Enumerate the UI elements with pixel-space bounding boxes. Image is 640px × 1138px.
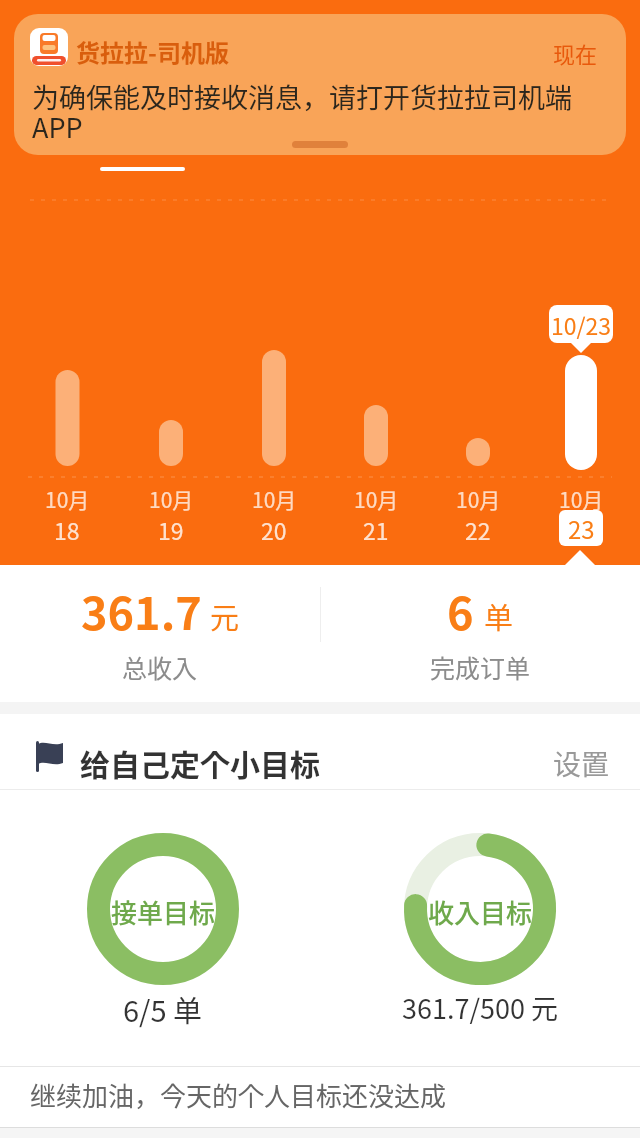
- staticText: 10月: [45, 484, 90, 514]
- staticText: 10月: [149, 484, 194, 514]
- staticText: 6: [447, 578, 474, 643]
- staticText: 361.7: [81, 578, 202, 643]
- staticText: 20: [261, 513, 287, 546]
- staticText: 为确保能及时接收消息，请打开货拉拉司机端: [32, 77, 572, 116]
- button[interactable]: 货拉拉-司机版: [14, 14, 626, 155]
- staticText: 6/5 单: [123, 988, 203, 1030]
- staticText: 完成订单: [430, 649, 531, 685]
- staticText: 361.7/500 元: [402, 988, 559, 1027]
- button[interactable]: 给自己定个小目标: [0, 714, 640, 790]
- staticText: 10月: [252, 484, 297, 514]
- staticText: 给自己定个小目标: [80, 741, 320, 784]
- staticText: 元: [210, 595, 240, 637]
- staticText: 单: [484, 595, 514, 637]
- staticText: 19: [158, 513, 184, 546]
- staticText: 10月: [559, 484, 604, 514]
- staticText: 总收入: [122, 649, 198, 685]
- staticText: APP: [32, 107, 83, 146]
- staticText: 10月: [354, 484, 399, 514]
- staticText: 10月: [456, 484, 501, 514]
- staticText: 23: [568, 511, 595, 546]
- staticText: 10/23: [551, 308, 612, 341]
- staticText: 设置: [553, 743, 610, 784]
- staticText: 22: [465, 513, 491, 546]
- staticText: 18: [54, 513, 80, 546]
- button[interactable]: 23: [559, 510, 603, 546]
- staticText: 货拉拉-司机版: [76, 34, 229, 69]
- staticText: 继续加油，今天的个人目标还没达成: [30, 1076, 447, 1114]
- staticText: 收入目标: [428, 893, 533, 931]
- staticText: 21: [363, 513, 389, 546]
- staticText: 现在: [553, 37, 598, 69]
- staticText: 接单目标: [111, 893, 216, 931]
